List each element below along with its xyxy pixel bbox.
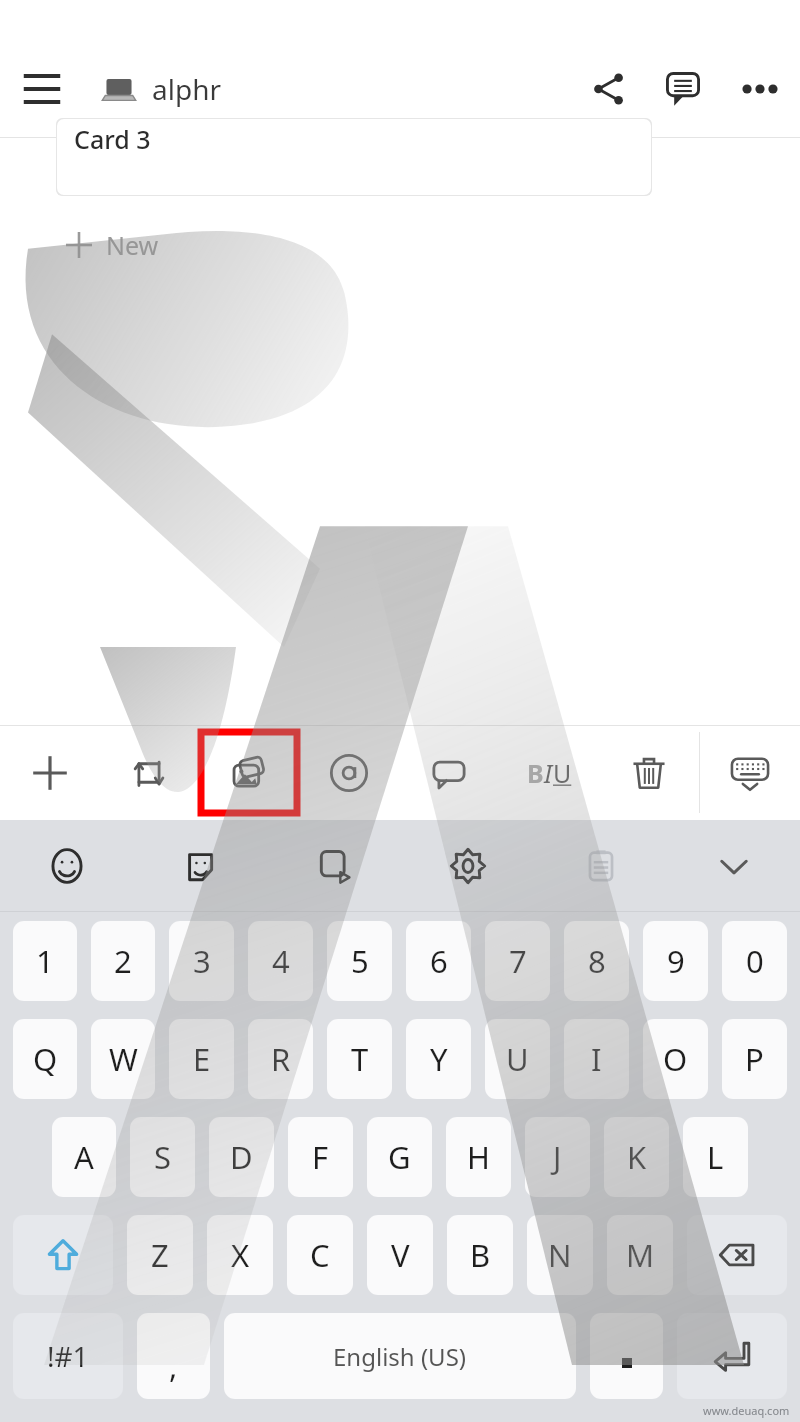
button[interactable]: Share [572,52,646,126]
staticText: E [193,1038,211,1080]
button[interactable]: H [446,1117,511,1197]
staticText: U [506,1038,529,1080]
button[interactable]: Backspace [687,1215,787,1295]
staticText: C [310,1234,330,1276]
button[interactable]: !#1 [13,1313,123,1399]
button[interactable]: Delete [599,725,699,820]
button[interactable]: Add [0,725,99,820]
button[interactable]: M [607,1215,673,1295]
button[interactable]: C [287,1215,353,1295]
staticText: A [74,1136,94,1178]
staticText: 4 [272,940,290,982]
button[interactable]: Z [127,1215,193,1295]
staticText: 3 [193,940,211,982]
staticText: Z [151,1234,169,1276]
button[interactable]: Menu [0,47,84,131]
button[interactable]: B [499,725,599,820]
button[interactable]: R [248,1019,313,1099]
staticText: !#1 [47,1337,89,1375]
button[interactable]: L [683,1117,748,1197]
button[interactable]: 9 [643,921,708,1001]
button[interactable]: P [722,1019,787,1099]
button[interactable]: Q [13,1019,77,1099]
staticText: 1 [36,940,54,982]
button[interactable]: 4 [248,921,313,1001]
staticText: 7 [509,940,527,982]
button[interactable]: A [52,1117,116,1197]
staticText: V [391,1234,410,1276]
staticText: H [467,1136,490,1178]
button[interactable]: V [367,1215,433,1295]
button[interactable]: Collapse [667,820,800,912]
button[interactable]: G [367,1117,432,1197]
button[interactable]: Emoji [0,820,134,912]
button[interactable]: 0 [722,921,787,1001]
button[interactable]: Comment [399,725,499,820]
button[interactable]: 7 [485,921,550,1001]
staticText: 8 [588,940,606,982]
staticText: New [106,228,159,262]
button[interactable]: B [447,1215,513,1295]
button[interactable]: 5 [327,921,392,1001]
button[interactable]: Stickers [134,820,268,912]
button[interactable]: New [66,218,256,272]
button[interactable]: I [564,1019,629,1099]
button[interactable]: Reorder [99,725,199,820]
button[interactable]: D [209,1117,274,1197]
button[interactable]: English (US) [224,1313,576,1399]
button[interactable]: U [485,1019,550,1099]
button[interactable]: W [91,1019,155,1099]
button[interactable]: K [604,1117,669,1197]
staticText: 2 [114,940,132,982]
button[interactable] [590,1313,663,1399]
button[interactable]: GIF [268,820,401,912]
button[interactable]: F [288,1117,353,1197]
staticText: F [312,1136,329,1178]
staticText: , [169,1345,178,1387]
button[interactable]: J [525,1117,590,1197]
staticText: N [548,1234,572,1276]
staticText: S [154,1136,172,1178]
button[interactable]: S [130,1117,195,1197]
button[interactable]: Card 3 [56,118,652,196]
button[interactable]: Shift [13,1215,113,1295]
staticText: P [745,1038,764,1080]
staticText: alphr [152,70,222,108]
staticText: U [553,756,572,790]
button[interactable]: Comments [646,52,720,126]
staticText: Card 3 [74,122,151,156]
button[interactable]: 2 [91,921,155,1001]
button[interactable]: 3 [169,921,234,1001]
button[interactable]: Settings [401,820,534,912]
staticText: T [351,1038,369,1080]
button[interactable]: O [643,1019,708,1099]
staticText: J [553,1136,562,1178]
staticText: 5 [351,940,369,982]
staticText: www.deuaq.com [703,1403,790,1418]
staticText: English (US) [333,1340,467,1373]
button[interactable]: Y [406,1019,471,1099]
staticText: X [231,1234,250,1276]
button[interactable]: Enter [677,1313,787,1399]
button[interactable]: , [137,1313,210,1399]
button[interactable]: 1 [13,921,77,1001]
button[interactable]: X [207,1215,273,1295]
button[interactable]: T [327,1019,392,1099]
staticText: L [707,1136,724,1178]
staticText: M [626,1234,655,1276]
button[interactable]: Clipboard [534,820,667,912]
button[interactable]: Insert image [201,732,297,813]
staticText: O [663,1038,688,1080]
button[interactable]: Mention [299,725,399,820]
button[interactable]: N [527,1215,593,1295]
button[interactable]: 8 [564,921,629,1001]
button[interactable]: Hide keyboard [700,725,800,820]
staticText: D [230,1136,253,1178]
button[interactable]: E [169,1019,234,1099]
staticText: G [388,1136,411,1178]
staticText: W [109,1038,138,1080]
button[interactable]: More options [720,49,800,129]
staticText: Q [33,1038,58,1080]
button[interactable]: 6 [406,921,471,1001]
staticText: K [627,1136,647,1178]
